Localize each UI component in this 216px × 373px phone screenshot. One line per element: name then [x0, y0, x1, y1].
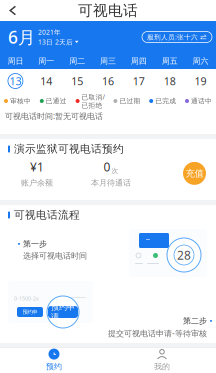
staticText: 账户余额 [21, 178, 53, 188]
staticText: 15 [71, 74, 83, 88]
staticText: 预约申 [22, 309, 37, 315]
staticText: ¥1 [30, 159, 44, 175]
staticText: 18 [164, 74, 176, 88]
staticText: 17 [133, 74, 145, 88]
staticText: 周四 [131, 56, 147, 66]
staticText: 周五 [162, 56, 178, 66]
staticText: 周一 [38, 56, 54, 66]
staticText: 审核中 [10, 97, 31, 105]
staticText: 已通过 [46, 97, 67, 105]
staticText: 次 [111, 167, 118, 175]
button[interactable]: 服刑人员:张十六 [142, 31, 212, 42]
button[interactable]: 14 [31, 69, 62, 93]
staticText: 第一步 [23, 239, 47, 249]
button[interactable]: 15 [62, 69, 93, 93]
staticText: 已完成 [155, 97, 176, 105]
staticText: 0 [103, 159, 110, 175]
staticText: 预约申请 [51, 302, 75, 322]
button[interactable]: 我的 [108, 347, 216, 372]
staticText: 19 [195, 74, 207, 88]
button[interactable]: 充值 [183, 162, 206, 185]
staticText: 周六 [193, 56, 209, 66]
staticText: 通话中 [191, 97, 212, 105]
button[interactable]: 19 [185, 69, 216, 93]
staticText: 13 [9, 74, 21, 88]
staticText: 本月待通话 [91, 178, 131, 188]
staticText: 14 [40, 74, 52, 88]
button[interactable]: 18 [154, 69, 185, 93]
button[interactable]: 16 [93, 69, 123, 93]
button[interactable]: 17 [123, 69, 154, 93]
staticText: 周日 [7, 56, 23, 66]
button[interactable]: 返回 [0, 0, 26, 21]
staticText: 可视电话时间:暂无可视电话 [5, 111, 103, 121]
staticText: 16 [102, 74, 114, 88]
staticText: 可视电话流程 [14, 208, 80, 221]
staticText: 提交可视电话申请-等待审核 [108, 328, 207, 338]
staticText: 已拒绝 [82, 101, 103, 109]
staticText: 0-1500-2x [14, 295, 39, 302]
staticText: 6月 [8, 25, 35, 48]
staticText: 第二步 [183, 316, 207, 326]
staticText: 已取消/ [82, 92, 105, 101]
button[interactable]: 预约 [0, 347, 108, 372]
staticText: 预约 [46, 362, 62, 371]
staticText: 演示监狱可视电话预约 [14, 142, 124, 155]
staticText: 周二 [69, 56, 85, 66]
staticText: 充值 [185, 168, 203, 179]
staticText: 已过期 [119, 97, 140, 105]
button[interactable]: 13 [0, 69, 31, 93]
staticText: 2021年 [38, 28, 61, 36]
staticText: 服刑人员:张十六 [147, 33, 198, 41]
staticText: 选择可视电话时间 [23, 251, 87, 261]
staticText: 我的 [154, 362, 170, 371]
staticText: 13日 2天后 [38, 37, 73, 46]
staticText: 周三 [100, 56, 116, 66]
staticText: 28 [177, 247, 191, 263]
staticText: 可视电话 [78, 1, 138, 19]
